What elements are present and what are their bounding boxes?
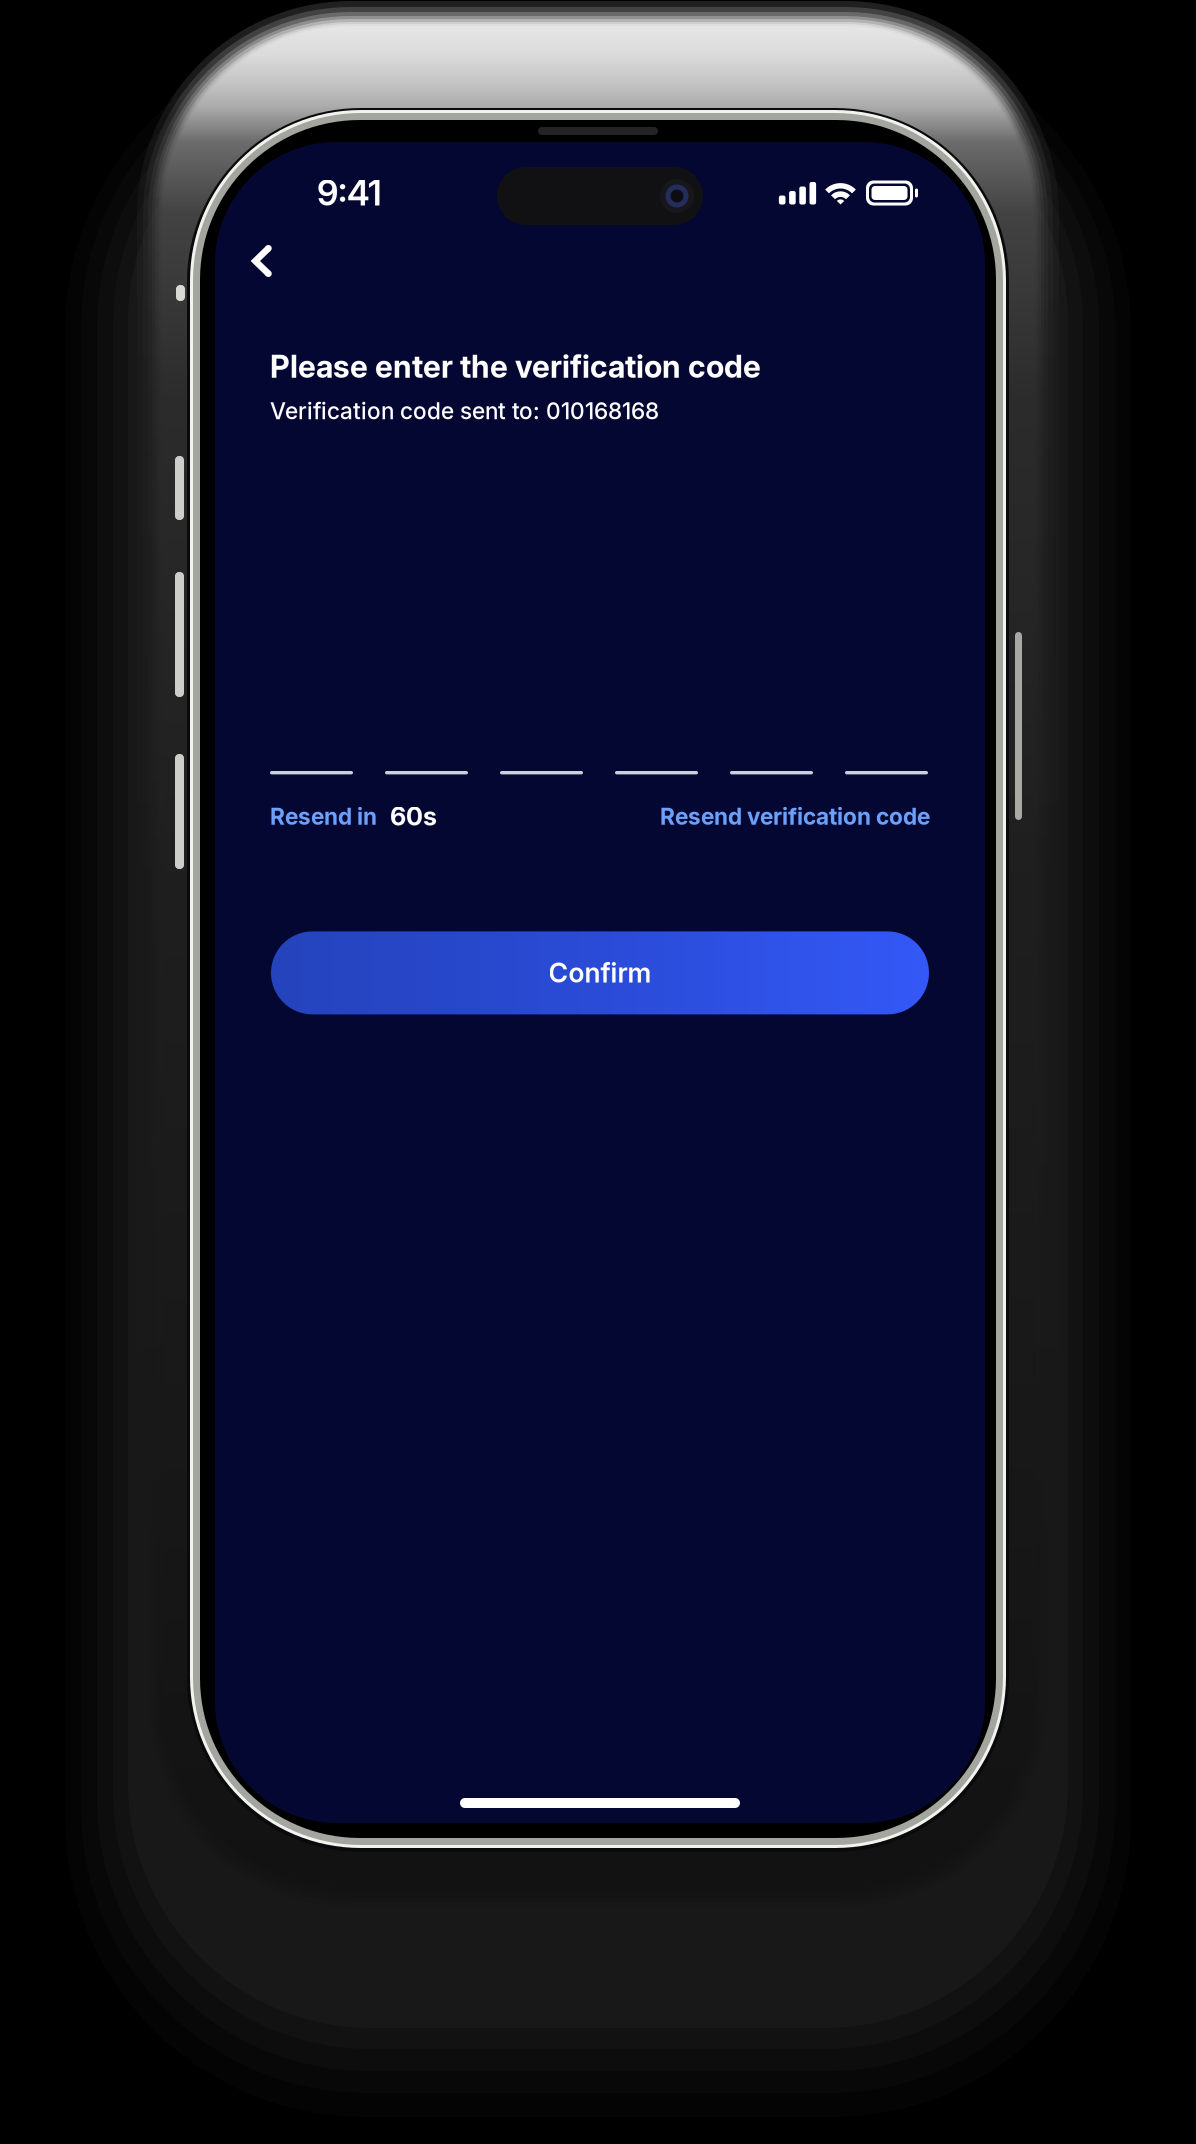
button[interactable]: Confirm bbox=[271, 931, 929, 1014]
staticText: Verification code sent to: 010168168 bbox=[270, 397, 659, 425]
button[interactable]: Resend in bbox=[270, 799, 437, 833]
button[interactable]: Back bbox=[215, 204, 985, 292]
staticText: Confirm bbox=[548, 957, 651, 989]
staticText: 60s bbox=[390, 801, 437, 832]
button[interactable]: Resend verification code bbox=[660, 799, 930, 833]
staticText: Resend verification code bbox=[660, 803, 930, 830]
staticText: Please enter the verification code bbox=[270, 348, 761, 385]
staticText: Resend in bbox=[270, 803, 377, 830]
staticText: 9:41 bbox=[317, 172, 382, 214]
